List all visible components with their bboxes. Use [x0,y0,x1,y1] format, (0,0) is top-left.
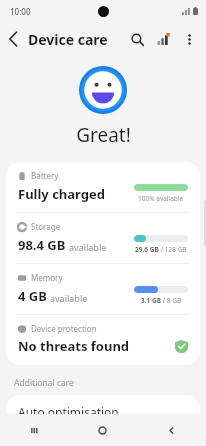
button[interactable]: Home [68,414,137,446]
staticText: 29.6 GB [135,245,159,254]
button[interactable]: Device protection [6,315,200,365]
staticText: 10:00 [10,6,31,17]
staticText: Additional care [14,377,74,389]
button[interactable]: Storage [6,213,200,263]
staticText: No threats found [18,337,175,355]
button[interactable]: Navigate up [0,26,26,52]
button[interactable]: Recents [0,414,68,446]
staticText: 3.1 GB [141,296,161,305]
button[interactable]: Battery [6,162,200,212]
button[interactable]: More options [176,26,202,52]
staticText: 100% available [138,194,184,203]
staticText: 98.4 GB [18,236,66,254]
staticText: Storage [31,221,61,232]
staticText: available [69,241,107,253]
button[interactable]: Back [137,414,206,446]
button[interactable]: Usage statistics [150,26,176,52]
staticText: / 128 GB [159,245,187,254]
staticText: Restart when needed : Off [18,422,117,433]
staticText: Memory [31,272,63,283]
staticText: Auto optimisation [18,404,119,420]
staticText: Device protection [31,323,97,334]
button[interactable]: Memory [6,264,200,314]
button[interactable]: Search [124,26,150,52]
staticText: 4 GB [18,287,47,305]
staticText: Battery [31,170,59,181]
button[interactable]: Auto optimisation [6,395,200,442]
staticText: Fully charged [18,185,105,203]
staticText: available [50,292,88,304]
staticText: Device care [28,30,108,49]
staticText: Great! [76,122,131,148]
staticText: / 8 GB [161,296,182,305]
